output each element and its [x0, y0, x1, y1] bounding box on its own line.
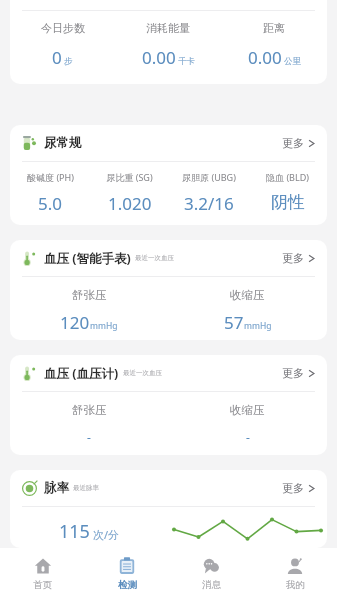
staticText: 血压 (智能手表) — [44, 250, 131, 267]
staticText: 今日步数 — [41, 21, 85, 35]
staticText: 115 — [59, 519, 90, 544]
staticText: 更多 — [282, 136, 304, 150]
staticText: 3.2/16 — [184, 192, 234, 215]
button[interactable]: 更多 — [282, 366, 315, 380]
staticText: 消息 — [202, 579, 221, 591]
staticText: 更多 — [282, 251, 304, 265]
other: 消息 — [202, 557, 220, 575]
button[interactable]: 尿常规 — [10, 125, 327, 225]
staticText: 120 — [60, 311, 90, 334]
button[interactable]: 更多 — [282, 251, 315, 265]
staticText: 脉率 — [44, 480, 69, 496]
staticText: 更多 — [282, 481, 304, 495]
other: 检测 — [118, 557, 136, 575]
staticText: 最近一次血压 — [135, 254, 174, 262]
staticText: 检测 — [118, 579, 137, 591]
staticText: mmHg — [244, 320, 272, 332]
staticText: 消耗能量 — [146, 21, 190, 35]
staticText: 阴性 — [271, 192, 305, 213]
staticText: 舒张压 — [72, 288, 107, 302]
button[interactable]: 我的步数 — [10, 0, 327, 84]
staticText: 0.00 — [142, 46, 176, 69]
staticText: 距离 — [263, 21, 285, 35]
staticText: 首页 — [33, 579, 52, 591]
button[interactable]: 我的 — [253, 548, 337, 600]
staticText: 尿胆原 (UBG) — [182, 171, 236, 183]
staticText: 最近脉率 — [73, 484, 99, 492]
button[interactable]: 首页 — [0, 548, 85, 600]
button[interactable]: 检测 — [85, 548, 169, 600]
staticText: 收缩压 — [230, 288, 265, 302]
button[interactable]: 消息 — [169, 548, 253, 600]
button[interactable]: 血压 (血压计) — [10, 355, 327, 455]
staticText: 尿常规 — [44, 135, 82, 151]
staticText: 更多 — [282, 366, 304, 380]
other: 首页 — [34, 557, 52, 575]
staticText: 舒张压 — [72, 403, 107, 417]
staticText: 1.020 — [108, 192, 152, 215]
button[interactable]: 更多 — [282, 136, 315, 150]
button[interactable]: 脉率 — [10, 470, 327, 548]
staticText: 57 — [224, 311, 244, 334]
staticText: 0.00 — [248, 46, 282, 69]
staticText: mmHg — [90, 320, 118, 332]
staticText: 千卡 — [178, 56, 195, 67]
staticText: 5.0 — [38, 192, 63, 215]
staticText: 收缩压 — [230, 403, 265, 417]
staticText: 酸碱度 (PH) — [27, 171, 74, 183]
staticText: 血压 (血压计) — [44, 365, 119, 382]
staticText: 步 — [64, 56, 73, 67]
staticText: - — [246, 429, 250, 445]
staticText: 最近一次血压 — [123, 369, 162, 377]
staticText: 0 — [52, 46, 62, 69]
other: 我的 — [286, 557, 304, 575]
staticText: 次/分 — [93, 527, 120, 542]
staticText: 公里 — [284, 56, 301, 67]
staticText: 隐血 (BLD) — [266, 171, 309, 183]
button[interactable]: 更多 — [282, 481, 315, 495]
button[interactable]: 血压 (智能手表) — [10, 240, 327, 340]
staticText: 我的 — [286, 579, 305, 591]
staticText: 尿比重 (SG) — [106, 171, 153, 183]
staticText: - — [87, 429, 91, 445]
